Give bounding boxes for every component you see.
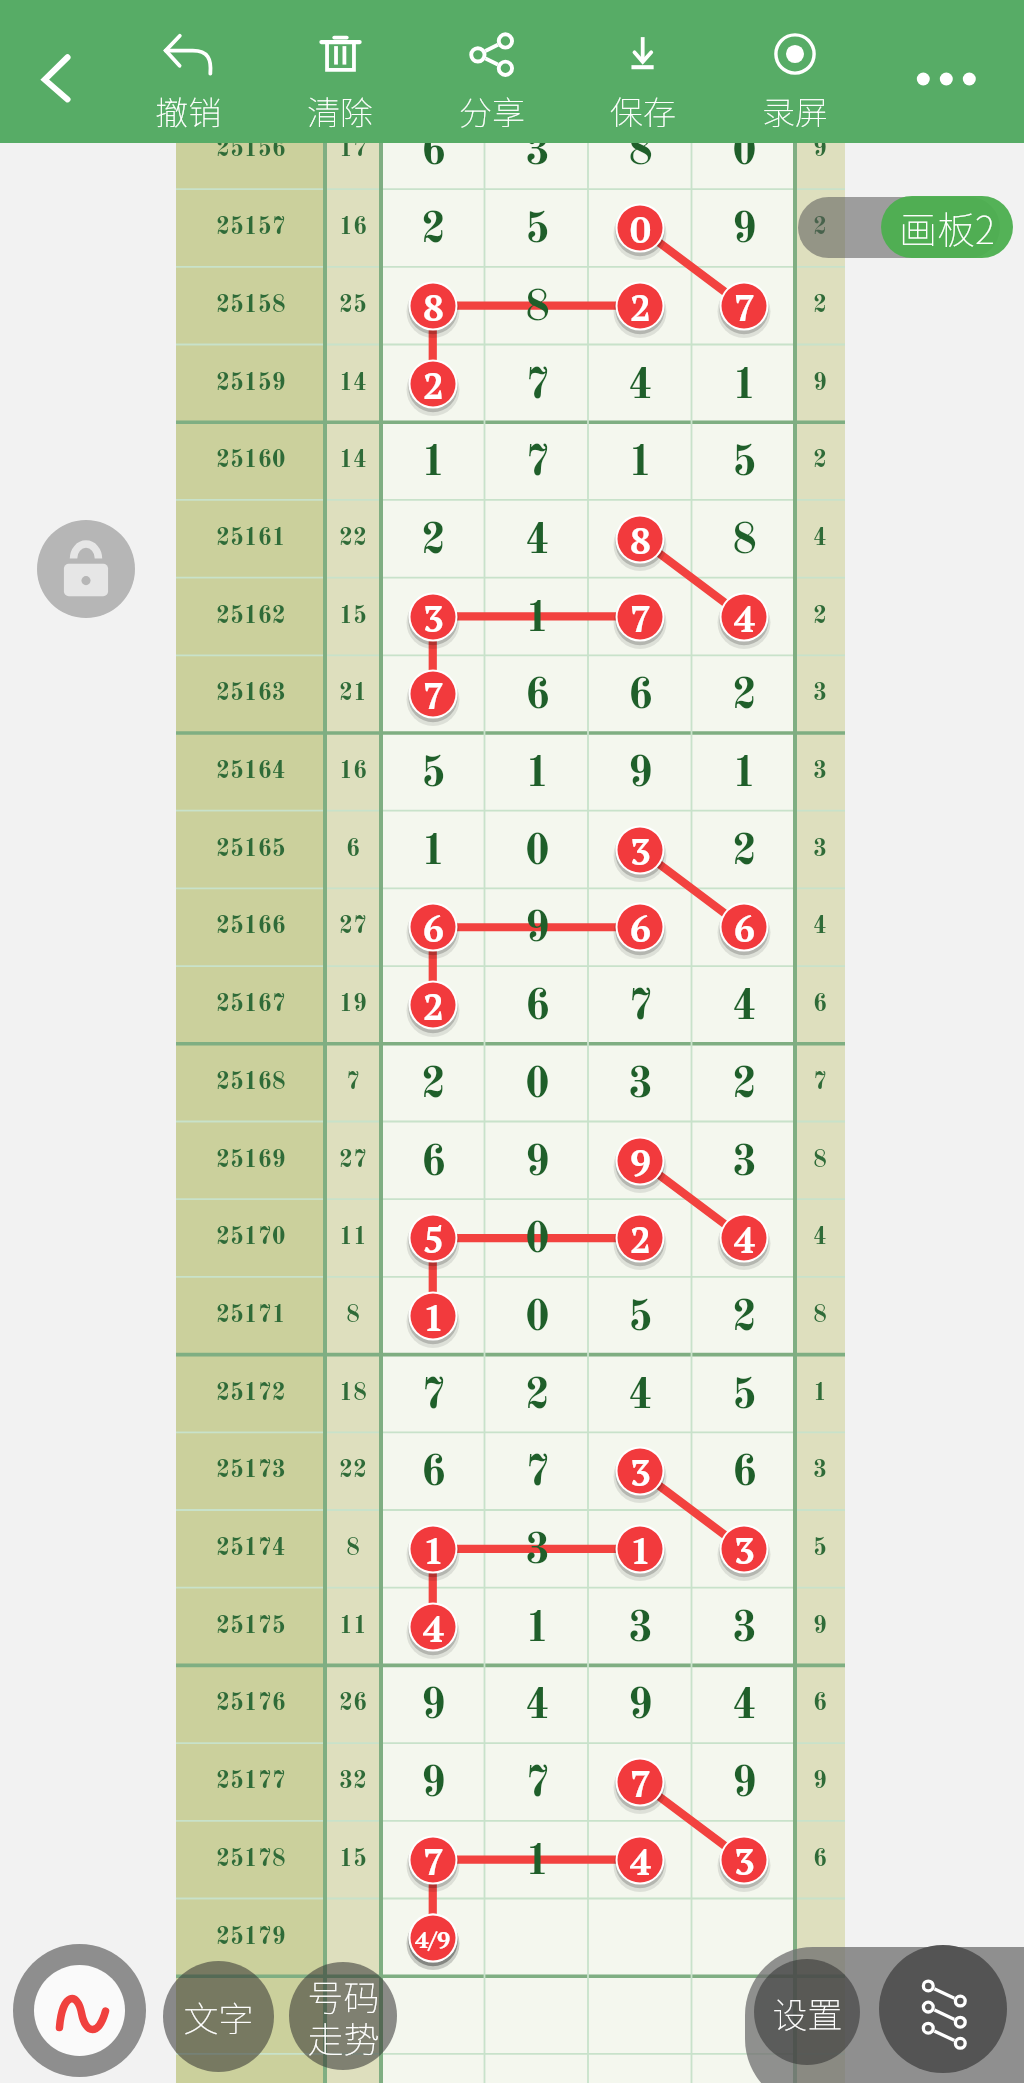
staticText: 号码 走势 [307, 1969, 380, 2064]
staticText: 1 [421, 442, 446, 485]
staticText: 2 [525, 1375, 550, 1418]
staticText: 2 [421, 520, 446, 563]
staticText: 撤销 [155, 87, 221, 135]
staticText: 0 [630, 205, 651, 254]
staticText: 7 [346, 1071, 360, 1095]
staticText: 5 [423, 1215, 444, 1264]
staticText: 6 [630, 904, 651, 953]
staticText: 8 [732, 520, 757, 563]
staticText: 6 [525, 986, 550, 1029]
staticText: 25164 [216, 760, 286, 784]
staticText: 3 [423, 594, 444, 643]
staticText: 3 [813, 838, 827, 862]
button[interactable]: 撤销 [126, 16, 250, 132]
staticText: 6 [628, 675, 653, 718]
staticText: 25172 [216, 1382, 286, 1406]
staticText: 2 [630, 283, 651, 332]
staticText: 2 [813, 294, 827, 318]
button[interactable]: More options [908, 49, 986, 109]
staticText: 25163 [216, 682, 286, 706]
staticText: 0 [732, 131, 757, 174]
staticText: 2 [423, 982, 444, 1031]
button[interactable]: 文字 [163, 1961, 274, 2072]
staticText: 4 [813, 915, 827, 939]
staticText: 1 [525, 598, 550, 641]
button[interactable]: 号码 走势 [289, 1962, 397, 2070]
button[interactable]: Back [22, 45, 90, 113]
staticText: 2 [423, 361, 444, 410]
staticText: 分享 [459, 87, 525, 135]
staticText: 6 [734, 904, 755, 953]
staticText: 3 [813, 760, 827, 784]
staticText: 9 [732, 209, 757, 252]
staticText: 3 [525, 131, 550, 174]
staticText: 7 [525, 1452, 550, 1495]
staticText: 1 [423, 1526, 444, 1575]
staticText: 7 [423, 671, 444, 720]
button[interactable]: 设置 [754, 1959, 860, 2065]
staticText: 25 [339, 294, 367, 318]
staticText: 4 [813, 527, 827, 551]
staticText: 4 [525, 520, 550, 563]
staticText: 25179 [216, 1926, 286, 1950]
staticText: 2 [732, 675, 757, 718]
staticText: 25167 [216, 993, 286, 1017]
staticText: 25175 [216, 1615, 286, 1639]
staticText: 1 [732, 365, 757, 408]
staticText: 15 [339, 605, 367, 629]
staticText: 14 [339, 372, 367, 396]
staticText: 5 [813, 1537, 827, 1561]
staticText: 2 [732, 1297, 757, 1340]
staticText: 9 [630, 1138, 651, 1187]
staticText: 3 [813, 1459, 827, 1483]
staticText: 8 [346, 1537, 360, 1561]
staticText: 5 [732, 442, 757, 485]
staticText: 7 [630, 594, 651, 643]
button[interactable]: 保存 [581, 16, 705, 132]
staticText: 文字 [183, 1991, 254, 2042]
staticText: 1 [630, 1526, 651, 1575]
staticText: 画板2 [899, 200, 995, 255]
staticText: 15 [339, 1848, 367, 1872]
staticText: 25166 [216, 915, 286, 939]
button[interactable]: 录屏 [733, 16, 857, 132]
staticText: 9 [813, 138, 827, 162]
staticText: 1 [732, 753, 757, 796]
staticText: 7 [423, 1837, 444, 1886]
staticText: 8 [813, 1149, 827, 1173]
staticText: 8 [346, 1304, 360, 1328]
staticText: 5 [732, 1375, 757, 1418]
staticText: 6 [813, 1848, 827, 1872]
staticText: 9 [525, 908, 550, 951]
staticText: 6 [813, 1692, 827, 1716]
staticText: 3 [734, 1526, 755, 1575]
button[interactable]: 画板2 [881, 196, 1013, 258]
staticText: 4 [813, 1226, 827, 1250]
staticText: 2 [732, 831, 757, 874]
staticText: 7 [421, 1375, 446, 1418]
button[interactable]: Brush [13, 1944, 146, 2077]
staticText: 6 [421, 1452, 446, 1495]
staticText: 27 [339, 915, 367, 939]
button[interactable]: 分享 [430, 16, 554, 132]
staticText: 7 [813, 1071, 827, 1095]
button[interactable]: Connections [879, 1945, 1007, 2073]
staticText: 2 [421, 209, 446, 252]
staticText: 9 [421, 1685, 446, 1728]
button[interactable]: 清除 [278, 16, 402, 132]
staticText: 4 [734, 594, 755, 643]
staticText: 5 [628, 1297, 653, 1340]
staticText: 9 [628, 753, 653, 796]
staticText: 25156 [216, 138, 286, 162]
button[interactable]: Lock [37, 520, 135, 618]
staticText: 4 [423, 1604, 444, 1653]
staticText: 5 [421, 753, 446, 796]
staticText: 11 [339, 1615, 367, 1639]
staticText: 25169 [216, 1149, 286, 1173]
staticText: 25176 [216, 1692, 286, 1716]
staticText: 2 [813, 216, 827, 240]
staticText: 0 [525, 1064, 550, 1107]
staticText: 18 [339, 1382, 367, 1406]
staticText: 3 [734, 1837, 755, 1886]
staticText: 8 [628, 131, 653, 174]
